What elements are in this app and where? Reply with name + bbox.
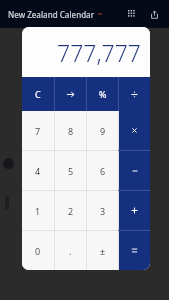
staticText: 8 xyxy=(68,125,74,137)
button[interactable]: 4 xyxy=(22,151,54,190)
staticText: ± xyxy=(100,245,106,257)
other: Backspace xyxy=(66,90,75,99)
button[interactable] xyxy=(119,77,150,111)
button[interactable]: 5 xyxy=(55,151,86,190)
button[interactable] xyxy=(119,231,150,270)
button[interactable] xyxy=(119,151,150,190)
staticText: 5 xyxy=(68,165,74,177)
button[interactable]: 6 xyxy=(87,151,118,190)
button[interactable]: 1 xyxy=(22,191,54,230)
button[interactable] xyxy=(119,111,150,150)
staticText: 0 xyxy=(35,245,41,257)
button[interactable]: 7 xyxy=(22,111,54,150)
staticText: % xyxy=(99,88,107,100)
button[interactable]: Share xyxy=(146,6,162,22)
button[interactable]: C xyxy=(22,77,54,111)
button[interactable]: . xyxy=(55,231,86,270)
staticText: 2 xyxy=(68,205,74,217)
staticText: 6 xyxy=(100,165,106,177)
staticText: 4 xyxy=(35,165,41,177)
staticText: New Zealand Calendar xyxy=(8,9,95,20)
staticText: C xyxy=(35,88,41,100)
button[interactable]: ± xyxy=(87,231,118,270)
staticText: . xyxy=(69,245,72,257)
staticText: 7 xyxy=(35,125,41,137)
staticText: 777,777 xyxy=(57,37,141,68)
button[interactable]: Backspace xyxy=(55,77,86,111)
button[interactable]: 8 xyxy=(55,111,86,150)
button[interactable] xyxy=(119,191,150,230)
staticText: 1 xyxy=(35,205,41,217)
button[interactable]: Apps grid xyxy=(124,6,140,22)
button[interactable]: 9 xyxy=(87,111,118,150)
button[interactable]: 2 xyxy=(55,191,86,230)
staticText: 9 xyxy=(100,125,106,137)
button[interactable]: 0 xyxy=(22,231,54,270)
button[interactable]: % xyxy=(87,77,118,111)
staticText: 3 xyxy=(100,205,106,217)
button[interactable]: 3 xyxy=(87,191,118,230)
